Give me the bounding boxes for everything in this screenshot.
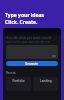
staticText: Generate bbox=[25, 62, 39, 66]
staticText: Type your ideas bbox=[5, 12, 44, 19]
staticText: Landing bbox=[40, 79, 52, 83]
staticText: Recent bbox=[6, 71, 16, 75]
button[interactable]: Generate bbox=[6, 61, 58, 66]
staticText: Portfolio bbox=[12, 79, 25, 83]
staticText: and let the assistant do the rest bbox=[6, 40, 51, 44]
button[interactable]: Landing bbox=[33, 77, 58, 91]
button[interactable]: Portfolio bbox=[6, 77, 31, 91]
staticText: Describe what you want to build bbox=[6, 36, 52, 40]
staticText: Click. Create. bbox=[5, 19, 38, 26]
button[interactable] bbox=[6, 45, 58, 59]
